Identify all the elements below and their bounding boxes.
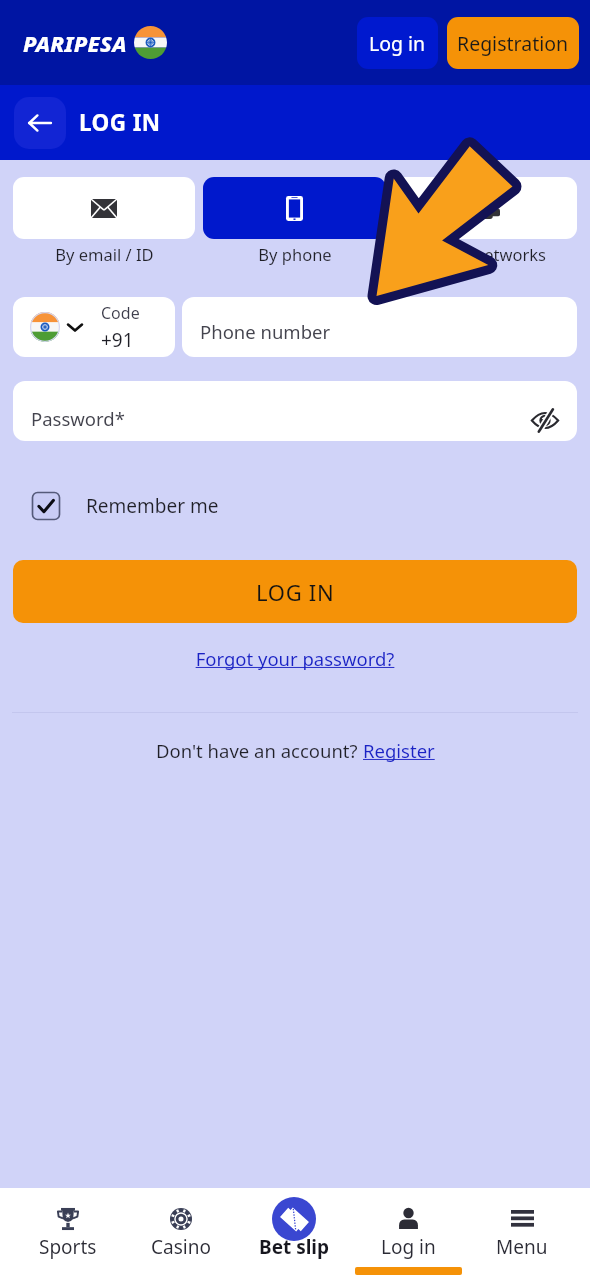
button[interactable]: Password*: [13, 381, 577, 441]
button[interactable]: By phone: [203, 177, 386, 265]
staticText: Phone number: [200, 319, 331, 344]
staticText: Sports: [39, 1234, 97, 1260]
button[interactable]: Remember me: [31, 491, 219, 521]
button[interactable]: By email / ID: [13, 177, 195, 265]
button[interactable]: Register: [363, 738, 435, 763]
button[interactable]: Social networks: [394, 177, 577, 265]
staticText: PARIPESA: [23, 28, 127, 58]
staticText: Registration: [457, 30, 569, 57]
button[interactable]: Show password: [527, 400, 563, 436]
button[interactable]: Bet slip: [237, 1188, 351, 1280]
button[interactable]: Code: [13, 297, 175, 357]
button[interactable]: Log in: [357, 17, 438, 69]
staticText: Social networks: [425, 243, 546, 265]
staticText: Menu: [496, 1234, 548, 1260]
staticText: Don't have an account?: [156, 738, 363, 763]
staticText: Log in: [381, 1234, 436, 1260]
button[interactable]: Log in: [351, 1188, 465, 1280]
staticText: Password*: [31, 406, 125, 431]
button[interactable]: Casino: [124, 1188, 237, 1280]
staticText: Code: [101, 302, 140, 324]
staticText: Bet slip: [259, 1234, 330, 1260]
staticText: +91: [101, 327, 134, 353]
staticText: LOG IN: [256, 577, 335, 607]
button[interactable]: Back: [14, 97, 66, 149]
staticText: Remember me: [86, 493, 219, 519]
staticText: By email / ID: [55, 243, 154, 265]
button[interactable]: Menu: [465, 1188, 579, 1280]
staticText: By phone: [258, 243, 332, 265]
staticText: Log in: [369, 30, 426, 57]
staticText: Casino: [151, 1234, 211, 1260]
button[interactable]: Phone number: [182, 297, 577, 357]
button[interactable]: Sports: [11, 1188, 124, 1280]
button[interactable]: Forgot your password?: [0, 646, 590, 671]
staticText: LOG IN: [79, 107, 161, 138]
button[interactable]: LOG IN: [13, 560, 577, 623]
button[interactable]: Registration: [447, 17, 579, 69]
